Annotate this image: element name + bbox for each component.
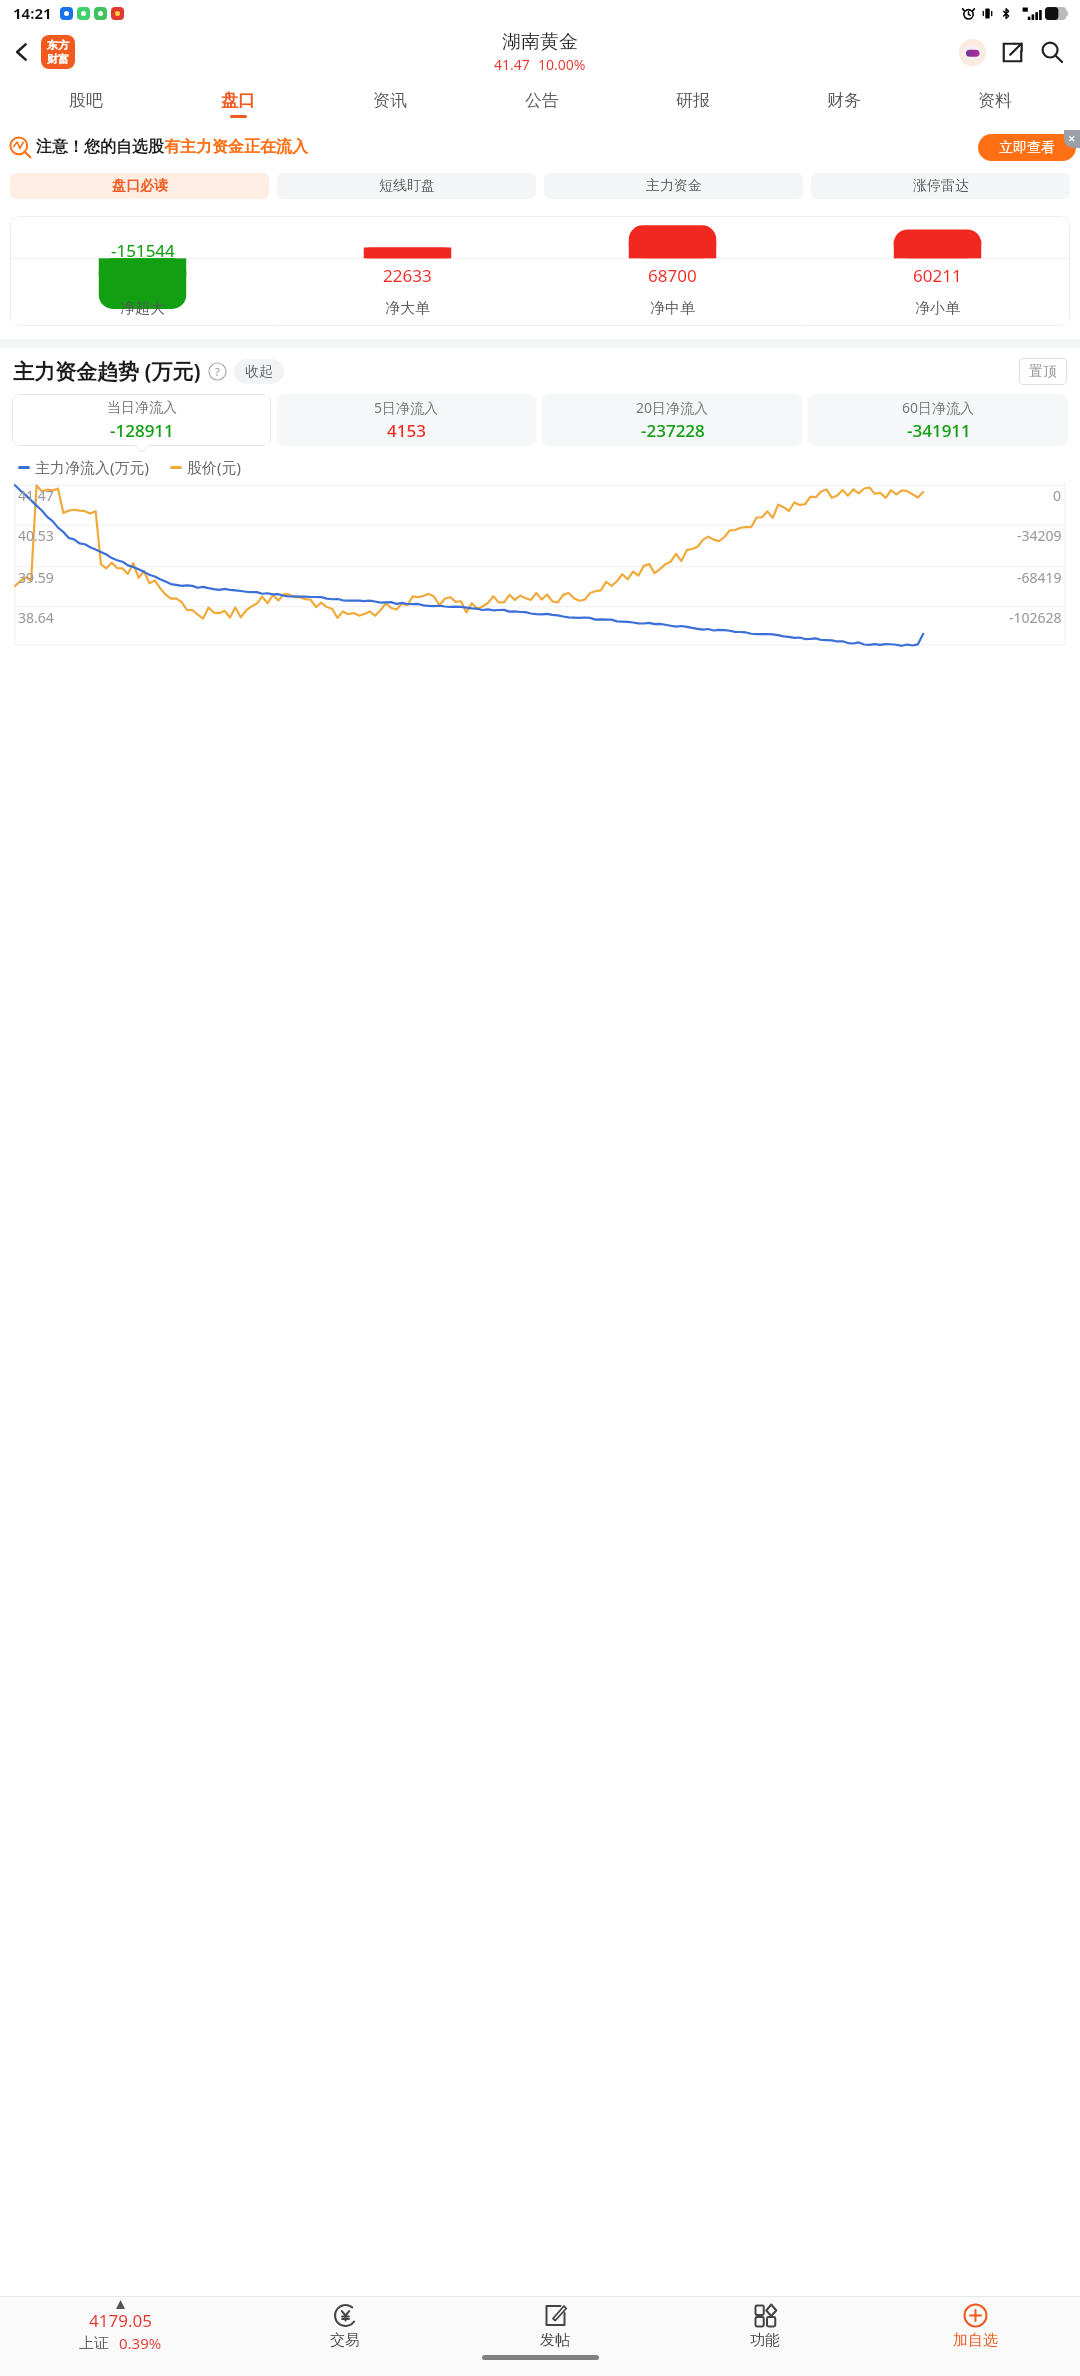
button[interactable]: 5日净流入 [277,394,536,446]
button[interactable]: Share [992,32,1032,72]
staticText: 股价(元) [187,457,242,477]
staticText: -68419 [1017,568,1062,587]
staticText: 注意！您的自选股 [36,137,164,157]
button[interactable]: 加自选 [870,2297,1080,2355]
staticText: -102628 [1009,608,1062,627]
staticText: 加自选 [953,2331,998,2350]
button[interactable]: 盘口 [162,78,314,130]
staticText: 财富 [47,52,69,66]
staticText: 盘口 [221,90,255,111]
button[interactable]: 当日净流入 [12,394,271,446]
staticText: 净小单 [915,299,960,318]
staticText: 4179.05 [89,2309,152,2332]
button[interactable]: 60日净流入 [808,394,1068,446]
staticText: 0.39% [119,2333,162,2353]
staticText: 60211 [913,264,962,287]
staticText: 20日净流入 [636,398,709,417]
staticText: 东方 [47,38,69,52]
button[interactable]: 短线盯盘 [277,173,536,199]
staticText: -128911 [110,419,174,442]
button[interactable]: 股吧 [10,78,162,130]
staticText: 资讯 [373,90,407,111]
button[interactable]: 功能 [660,2297,870,2355]
staticText: 收起 [245,363,273,381]
staticText: -151544 [111,239,175,262]
staticText: -341911 [907,419,971,442]
staticText: 当日净流入 [107,399,177,417]
staticText: 净大单 [385,299,430,318]
staticText: 交易 [330,2331,360,2350]
staticText: 41.47 [18,486,54,505]
button[interactable]: 4179.05 [0,2297,240,2355]
staticText: ? [215,364,220,379]
button[interactable]: Help [208,362,227,381]
button[interactable]: 盘口必读 [10,173,269,199]
staticText: 主力资金 [646,177,702,195]
staticText: 14:21 [13,3,52,23]
staticText: 68700 [648,264,697,287]
staticText: 置顶 [1029,363,1057,381]
button[interactable]: Assistant [952,32,992,72]
staticText: 41.47 [494,55,530,74]
staticText: 主力净流入(万元) [35,457,150,477]
staticText: 4153 [387,419,426,442]
staticText: 发帖 [540,2331,570,2350]
button[interactable]: 发帖 [450,2297,660,2355]
button[interactable]: 公告 [466,78,617,130]
staticText: 22633 [383,264,432,287]
staticText: 38.64 [18,608,54,627]
button[interactable]: 资料 [919,78,1070,130]
staticText: 40.53 [18,526,54,545]
staticText: 5日净流入 [374,398,439,417]
staticText: ✕ [1068,134,1076,144]
staticText: 财务 [827,90,861,111]
button[interactable]: 主力资金 [544,173,803,199]
button[interactable]: Back [2,32,42,72]
button[interactable]: 置顶 [1019,358,1067,385]
staticText: 涨停雷达 [913,177,969,195]
staticText: 净超大 [120,299,165,318]
button[interactable]: 收起 [234,359,284,384]
button[interactable]: Search [1032,32,1072,72]
staticText: -34209 [1017,526,1062,545]
staticText: 短线盯盘 [379,177,435,195]
staticText: 60日净流入 [902,398,975,417]
button[interactable]: 研报 [617,78,768,130]
button[interactable]: East Money [41,35,75,69]
button[interactable]: 20日净流入 [542,394,802,446]
staticText: 湖南黄金 [502,30,578,54]
staticText: 股吧 [69,90,103,111]
staticText: 公告 [525,90,559,111]
button[interactable]: 财务 [768,78,919,130]
button[interactable]: Close [1064,130,1080,148]
staticText: 资料 [978,90,1012,111]
staticText: 立即查看 [999,139,1055,157]
button[interactable]: 涨停雷达 [811,173,1070,199]
staticText: 盘口必读 [112,177,168,195]
button[interactable]: 交易 [240,2297,450,2355]
staticText: 0 [1053,486,1062,505]
staticText: 10.00% [538,55,586,74]
button[interactable]: 资讯 [314,78,466,130]
staticText: 有主力资金正在流入 [164,137,308,157]
staticText: 研报 [676,90,710,111]
staticText: 主力资金趋势 (万元) [13,357,201,386]
staticText: -237228 [641,419,705,442]
staticText: 上证 [79,2334,109,2353]
button[interactable]: 立即查看 [978,134,1076,161]
staticText: 功能 [750,2331,780,2350]
button[interactable]: -151544 [10,216,1070,326]
staticText: 39.59 [18,568,54,587]
staticText: 净中单 [650,299,695,318]
